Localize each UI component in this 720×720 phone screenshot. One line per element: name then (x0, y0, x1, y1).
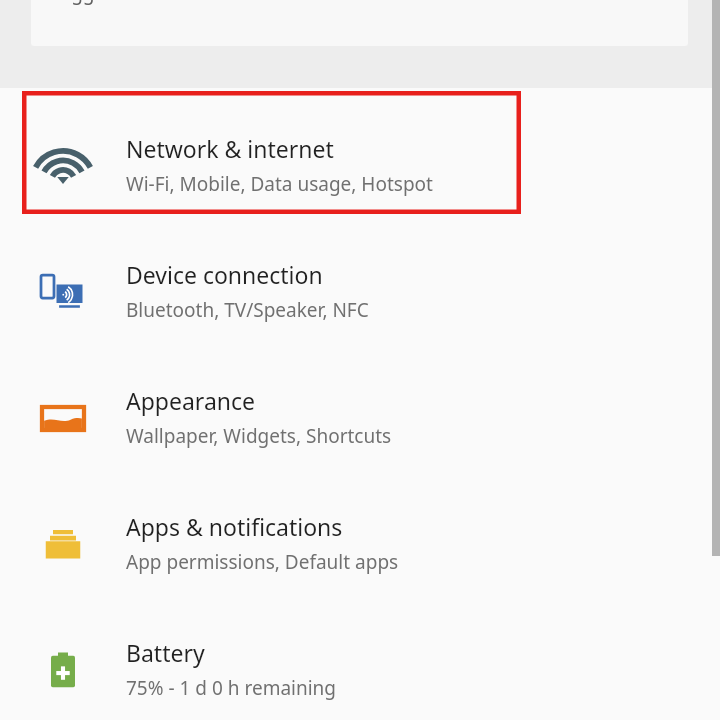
button[interactable]: Device connection (0, 230, 720, 356)
staticText: App permissions, Default apps (126, 549, 399, 575)
staticText: Wallpaper, Widgets, Shortcuts (126, 423, 392, 449)
staticText: Appearance (126, 385, 256, 416)
staticText: Suggestions (49, 0, 159, 6)
button[interactable]: Apps & notifications (0, 482, 720, 608)
staticText: Wi-Fi, Mobile, Data usage, Hotspot (126, 171, 433, 197)
staticText: Network & internet (126, 133, 334, 164)
staticText: 75% - 1 d 0 h remaining (126, 675, 337, 701)
button[interactable]: Suggestions (31, 0, 688, 46)
staticText: Bluetooth, TV/Speaker, NFC (126, 297, 369, 323)
staticText: Device connection (126, 259, 323, 290)
button[interactable]: Battery (0, 608, 720, 720)
staticText: Apps & notifications (126, 511, 343, 542)
button[interactable]: Network & internet (0, 104, 720, 230)
button[interactable]: Appearance (0, 356, 720, 482)
staticText: Battery (126, 637, 205, 668)
